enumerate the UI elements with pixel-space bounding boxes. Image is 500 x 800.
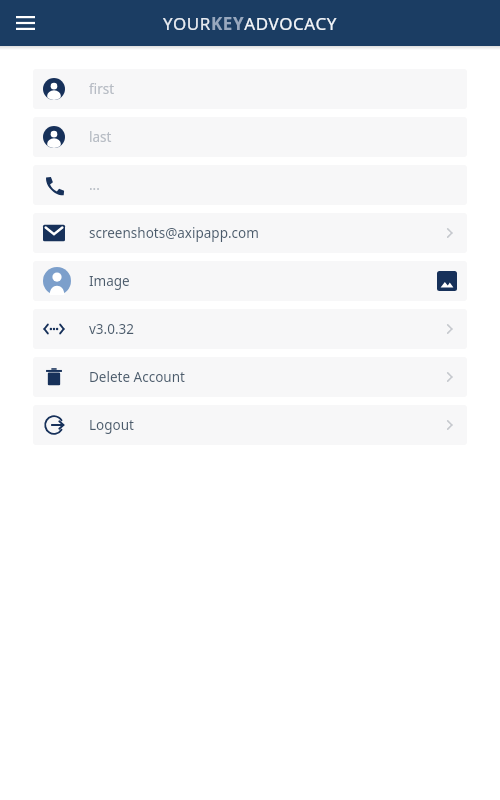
staticText: Logout: [89, 416, 134, 434]
staticText: v3.0.32: [89, 320, 134, 338]
button[interactable]: last: [33, 117, 467, 157]
button[interactable]: first: [33, 69, 467, 109]
staticText: last: [89, 128, 112, 146]
staticText: YOURKEYADVOCACY: [163, 12, 338, 35]
staticText: screenshots@axipapp.com: [89, 224, 259, 242]
staticText: first: [89, 80, 115, 98]
button[interactable]: Logout: [33, 405, 467, 445]
button[interactable]: Menu: [8, 6, 42, 40]
button[interactable]: ...: [33, 165, 467, 205]
staticText: ...: [89, 176, 100, 194]
button[interactable]: v3.0.32: [33, 309, 467, 349]
staticText: Delete Account: [89, 368, 185, 386]
staticText: Image: [89, 272, 130, 290]
button[interactable]: Image: [33, 261, 467, 301]
button[interactable]: Pick image: [437, 271, 457, 291]
button[interactable]: Delete Account: [33, 357, 467, 397]
button[interactable]: screenshots@axipapp.com: [33, 213, 467, 253]
